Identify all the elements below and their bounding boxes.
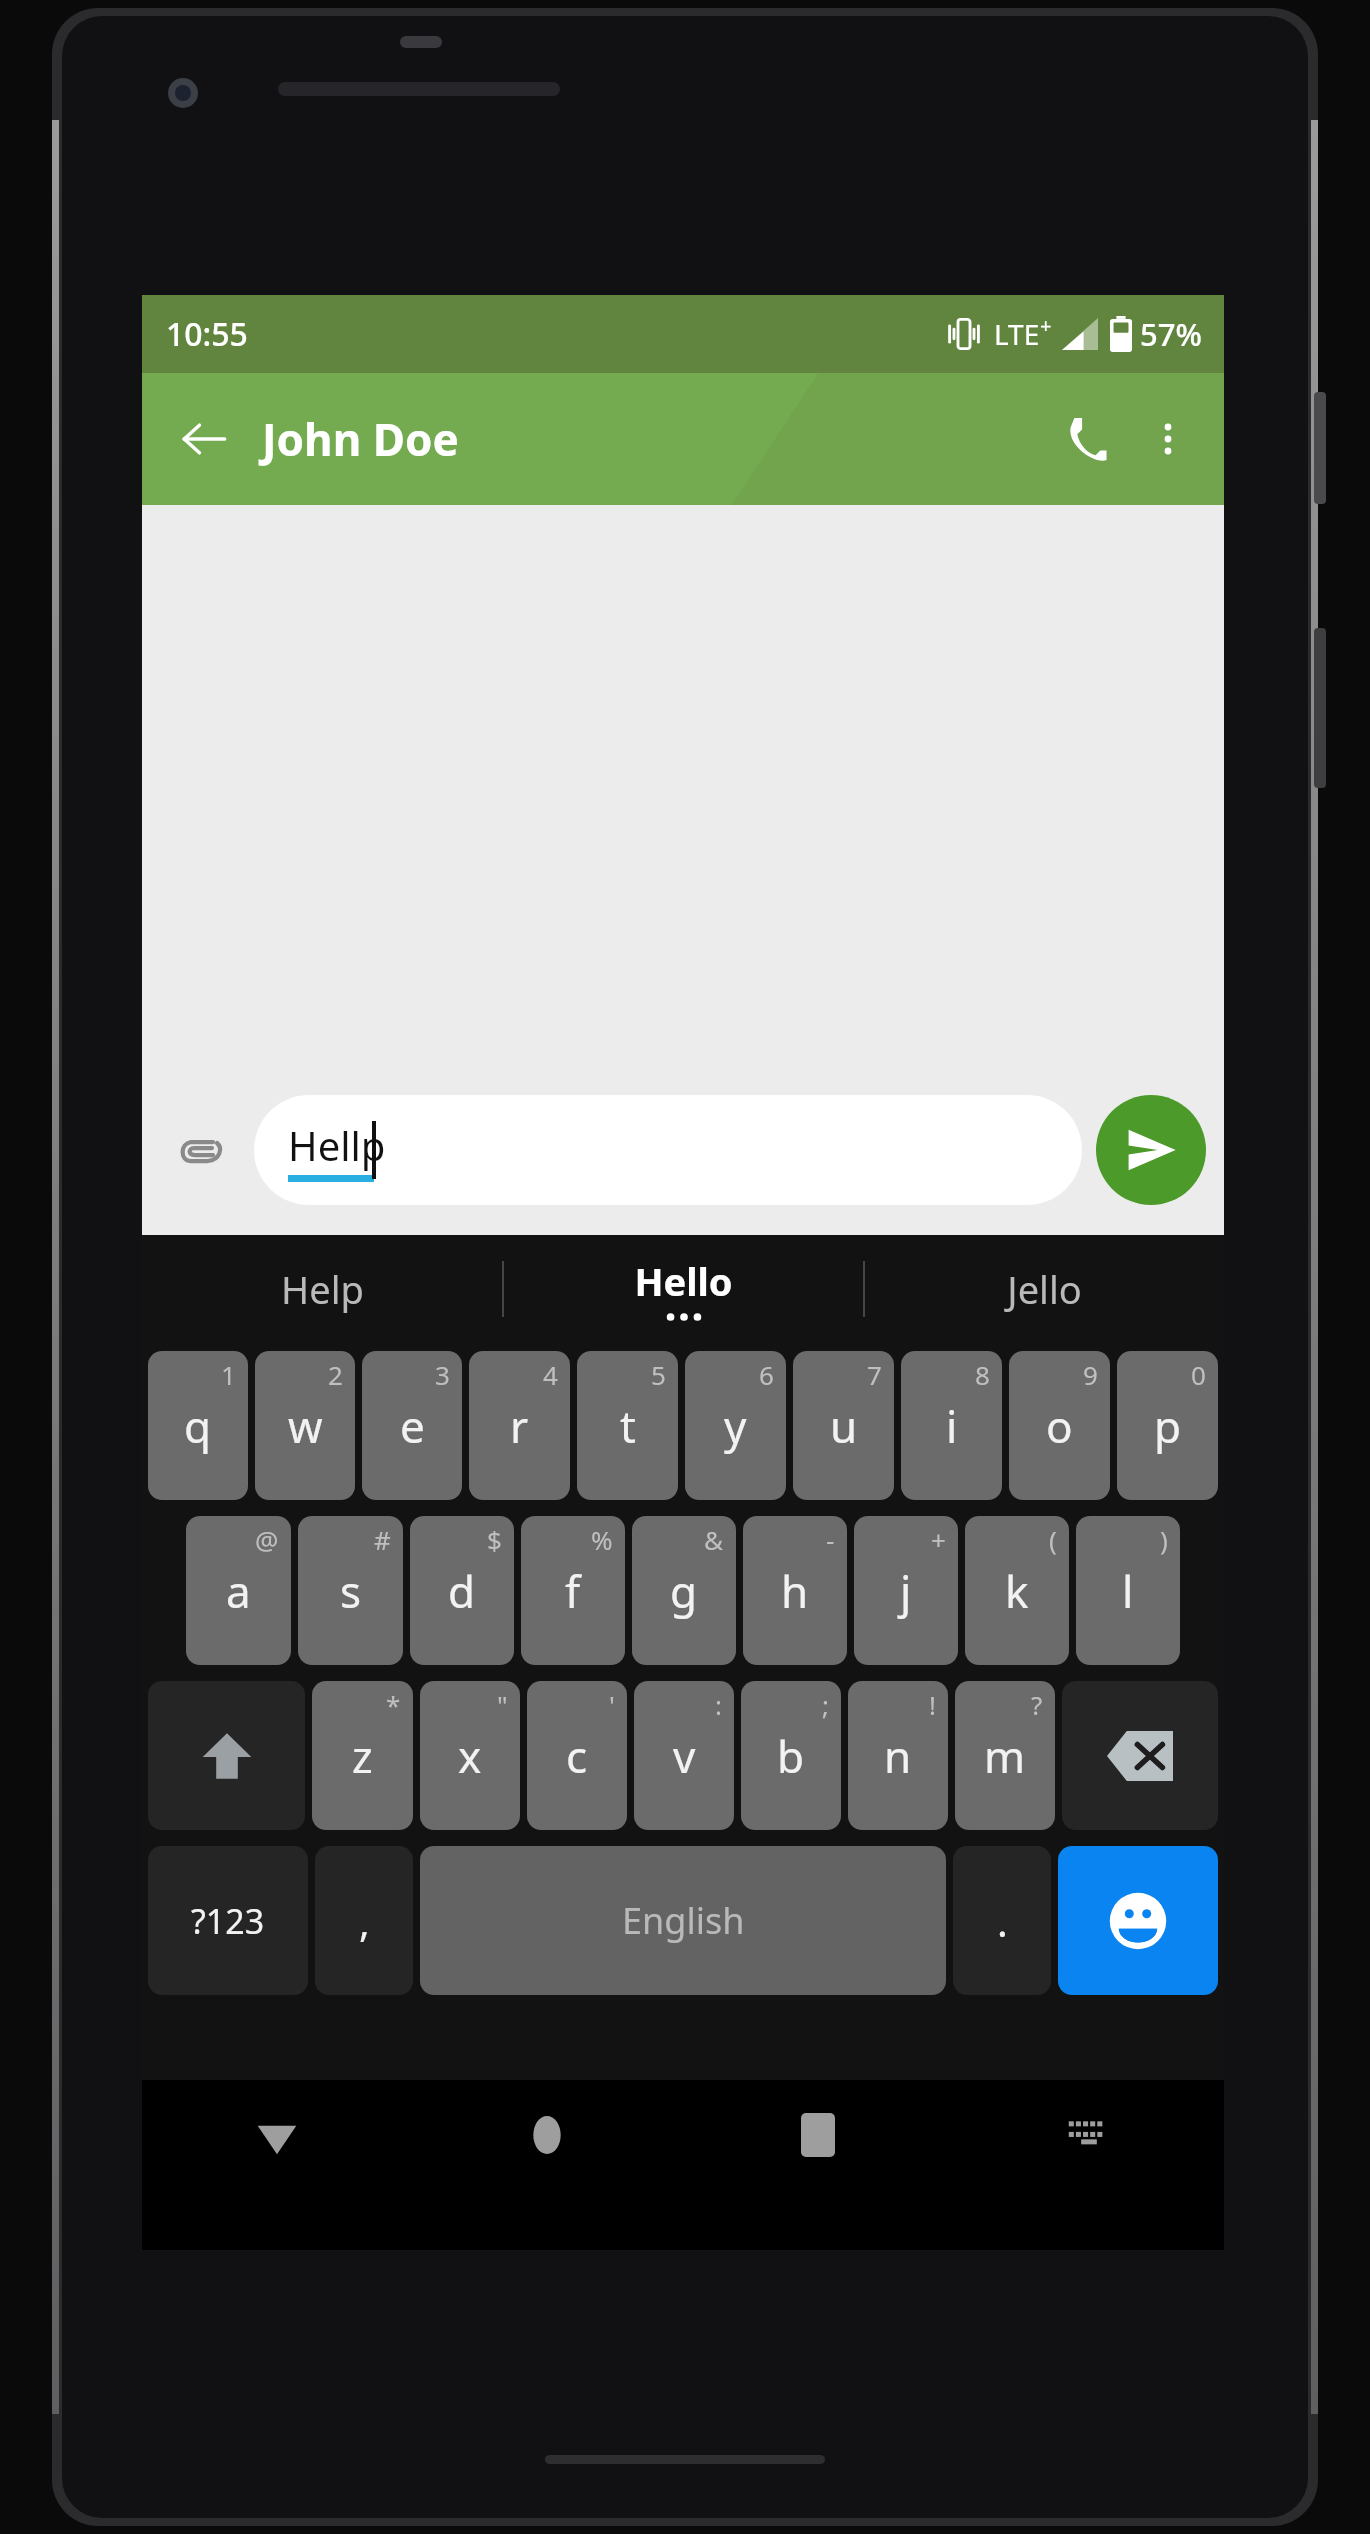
staticText: ; [822,1687,829,1722]
button[interactable]: , [315,1846,413,1995]
staticText: John Doe [262,409,459,469]
button[interactable]: Back [162,397,246,481]
staticText: # [374,1522,391,1557]
staticText: z [352,1726,373,1786]
staticText: 6 [759,1357,774,1392]
staticText: q [184,1396,212,1456]
button[interactable]: Attach file [160,1108,244,1192]
staticText: : [715,1687,722,1722]
button[interactable]: Backspace [1062,1681,1218,1830]
button[interactable]: p [1117,1351,1218,1500]
staticText: v [673,1726,696,1786]
button[interactable]: m [955,1681,1055,1830]
button[interactable]: n [848,1681,948,1830]
staticText: 7 [867,1357,882,1392]
button[interactable]: . [953,1846,1051,1995]
staticText: n [884,1726,912,1786]
button[interactable]: z [312,1681,413,1830]
staticText: 4 [543,1357,558,1392]
staticText: Hellp [288,1118,386,1172]
button[interactable]: Hide keyboard [142,2080,412,2190]
button[interactable]: Home [412,2080,682,2190]
button[interactable]: Call [1042,397,1126,481]
staticText: ) [1160,1522,1168,1557]
staticText: ' [609,1687,615,1722]
staticText: % [591,1522,613,1557]
staticText: f [565,1561,581,1621]
button[interactable]: f [521,1516,625,1665]
staticText: 3 [435,1357,450,1392]
button[interactable]: r [469,1351,570,1500]
button[interactable]: Emoji [1058,1846,1218,1995]
button[interactable]: Switch keyboard [953,2080,1224,2190]
button[interactable]: q [148,1351,248,1500]
button[interactable]: a [186,1516,291,1665]
staticText: l [1122,1561,1134,1621]
staticText: 1 [221,1357,236,1392]
button[interactable]: Send [1096,1095,1206,1205]
button[interactable]: j [854,1516,958,1665]
button[interactable]: l [1076,1516,1180,1665]
button[interactable]: h [743,1516,847,1665]
staticText: u [830,1396,858,1456]
button[interactable]: b [741,1681,841,1830]
staticText: . [997,1894,1008,1948]
button[interactable]: w [255,1351,355,1500]
button[interactable]: c [527,1681,627,1830]
button[interactable]: i [901,1351,1002,1500]
button[interactable]: y [685,1351,786,1500]
staticText: Hello [634,1255,733,1307]
button[interactable]: e [362,1351,462,1500]
staticText: h [781,1561,809,1621]
button[interactable]: g [632,1516,736,1665]
staticText: b [777,1726,805,1786]
staticText: + [931,1522,946,1557]
button[interactable]: Hello [504,1235,863,1343]
staticText: 9 [1083,1357,1098,1392]
staticText: 5 [651,1357,666,1392]
staticText: w [288,1396,323,1456]
staticText: g [670,1561,698,1621]
staticText: + [1040,312,1052,339]
staticText: Jello [1007,1263,1082,1315]
staticText: 8 [975,1357,990,1392]
staticText: 0 [1191,1357,1206,1392]
button[interactable]: o [1009,1351,1110,1500]
staticText: , [359,1894,370,1948]
button[interactable]: Jello [865,1235,1224,1343]
button[interactable]: x [420,1681,520,1830]
button[interactable]: s [298,1516,403,1665]
button[interactable]: ?123 [148,1846,308,1995]
staticText: * [386,1687,401,1722]
staticText: k [1005,1561,1029,1621]
staticText: 10:55 [166,312,248,356]
staticText: " [497,1687,508,1722]
staticText: @ [255,1522,279,1557]
button[interactable]: v [634,1681,734,1830]
staticText: English [622,1896,745,1945]
staticText: ? [1031,1687,1043,1722]
button[interactable]: k [965,1516,1069,1665]
staticText: ! [929,1687,936,1722]
button[interactable]: Hellp [254,1095,1082,1205]
button[interactable]: d [410,1516,514,1665]
staticText: o [1046,1396,1073,1456]
button[interactable]: u [793,1351,894,1500]
button[interactable]: Shift [148,1681,305,1830]
button[interactable]: t [577,1351,678,1500]
button[interactable]: Recent apps [682,2080,953,2190]
button[interactable]: More options [1126,397,1210,481]
staticText: ( [1049,1522,1057,1557]
staticText: - [826,1522,835,1557]
button[interactable]: Help [142,1235,502,1343]
staticText: j [900,1561,912,1621]
staticText: & [704,1522,724,1557]
staticText: ?123 [191,1898,265,1944]
staticText: y [724,1396,747,1456]
staticText: d [448,1561,476,1621]
staticText: 57% [1140,313,1202,355]
staticText: e [400,1396,425,1456]
button[interactable]: English [420,1846,946,1995]
staticText: t [620,1396,636,1456]
staticText: LTE [994,315,1040,353]
